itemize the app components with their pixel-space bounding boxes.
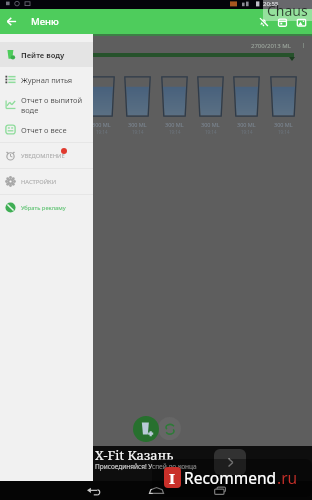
- button[interactable]: Back: [81, 481, 105, 500]
- staticText: НАСТРОЙКИ: [21, 178, 57, 186]
- staticText: Отчет о выпитой: [21, 95, 83, 105]
- staticText: 19:14: [278, 129, 290, 135]
- button[interactable]: Журнал питья: [0, 67, 93, 92]
- button[interactable]: Recent apps: [208, 481, 232, 500]
- staticText: 19:14: [23, 129, 35, 135]
- button[interactable]: Отчет о весе: [0, 117, 93, 142]
- staticText: 19:14: [205, 129, 217, 135]
- staticText: 19:14: [60, 129, 72, 135]
- button[interactable]: УВЕДОМЛЕНИЕ: [0, 143, 93, 168]
- button[interactable]: Back: [0, 9, 22, 33]
- staticText: I: [169, 468, 176, 488]
- staticText: 20:55: [263, 0, 279, 8]
- button[interactable]: History: [158, 417, 181, 440]
- staticText: Меню: [31, 15, 59, 28]
- button[interactable]: Gallery: [292, 10, 311, 34]
- staticText: Отчет о весе: [21, 125, 67, 135]
- staticText: УВЕДОМЛЕНИЕ: [21, 152, 65, 160]
- button[interactable]: Home: [144, 481, 168, 500]
- staticText: Присоединяйся! Успей до конца: [95, 462, 197, 471]
- staticText: Убрать рекламу: [21, 204, 66, 212]
- staticText: 19:14: [241, 129, 253, 135]
- staticText: воде: [21, 105, 39, 115]
- staticText: 300 ML: [237, 121, 256, 128]
- button[interactable]: Убрать рекламу: [0, 195, 93, 220]
- button[interactable]: Пейте воду: [0, 42, 93, 67]
- button[interactable]: Open ad: [214, 449, 246, 475]
- staticText: 300 ML: [128, 121, 147, 128]
- staticText: .ru: [277, 467, 298, 488]
- button[interactable]: Add drink: [133, 416, 159, 442]
- staticText: Пейте воду: [21, 50, 65, 60]
- staticText: 2700/2013 ML: [251, 42, 291, 50]
- staticText: Recommend: [184, 467, 277, 488]
- staticText: 19:14: [132, 129, 144, 135]
- staticText: 19:14: [96, 129, 108, 135]
- staticText: Chaus: [267, 1, 308, 20]
- staticText: 300 ML: [92, 121, 111, 128]
- staticText: Журнал питья: [21, 75, 73, 85]
- button[interactable]: Calendar: [273, 10, 292, 34]
- staticText: 300 ML: [165, 121, 184, 128]
- button[interactable]: НАСТРОЙКИ: [0, 169, 93, 194]
- button[interactable]: Mute notifications: [254, 10, 273, 34]
- staticText: 19:14: [169, 129, 181, 135]
- button[interactable]: Отчет о выпитой: [0, 92, 93, 117]
- staticText: X-Fit Казань: [95, 446, 174, 464]
- staticText: 300 ML: [201, 121, 220, 128]
- staticText: 300 ML: [274, 121, 293, 128]
